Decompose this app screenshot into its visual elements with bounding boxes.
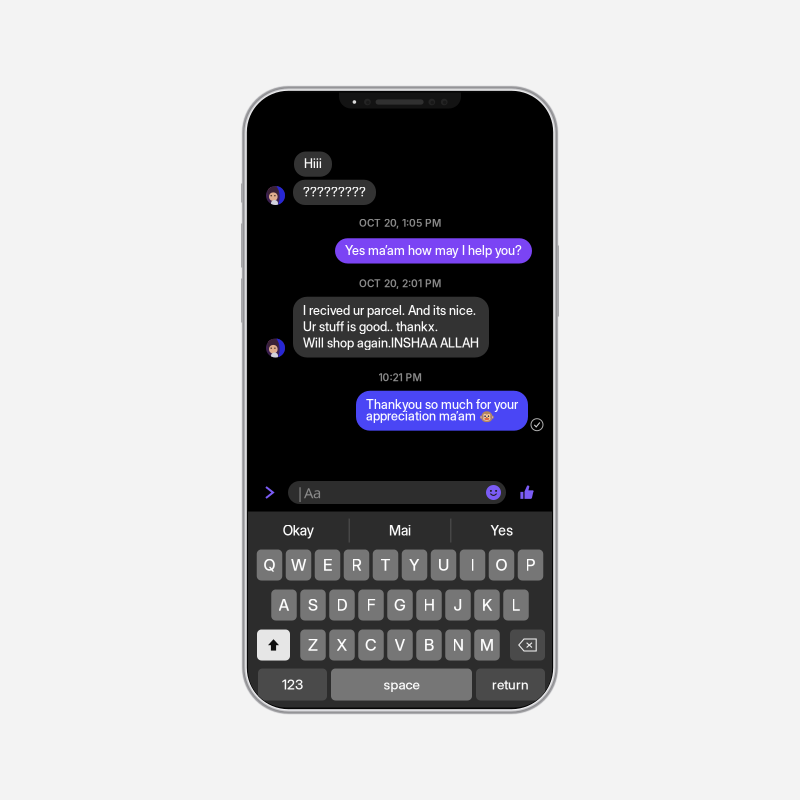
staticText: Y [409, 555, 420, 575]
button[interactable]: J [445, 589, 471, 620]
staticText: N [452, 635, 463, 655]
staticText: W [291, 555, 306, 575]
button[interactable]: Okay [248, 511, 349, 549]
staticText: B [424, 635, 434, 655]
button[interactable]: Mai [350, 511, 450, 549]
button[interactable]: D [329, 589, 355, 620]
staticText: O [495, 555, 507, 575]
button[interactable]: Z [300, 629, 326, 660]
staticText: |Aa [296, 483, 321, 502]
staticText: Yes ma’am how may I help you? [345, 243, 522, 258]
staticText: S [308, 595, 318, 615]
button[interactable]: X [329, 629, 355, 660]
staticText: 123 [282, 676, 303, 693]
staticText: T [380, 555, 390, 575]
staticText: M [480, 635, 494, 655]
button[interactable]: Choose an emoji [486, 485, 501, 500]
staticText: C [365, 635, 377, 655]
staticText: L [511, 595, 520, 615]
button[interactable]: M [474, 629, 500, 660]
staticText: H [423, 595, 434, 615]
staticText: ????????? [303, 184, 366, 199]
staticText: V [394, 635, 405, 655]
staticText: E [323, 555, 332, 575]
button[interactable]: P [518, 549, 543, 580]
staticText: Hiii [304, 156, 322, 171]
staticText: X [336, 635, 347, 655]
staticText: I [470, 555, 474, 575]
button[interactable]: E [315, 549, 340, 580]
staticText: G [394, 595, 406, 615]
staticText: A [278, 595, 289, 615]
staticText: 10:21 PM [378, 371, 421, 384]
staticText: P [525, 555, 535, 575]
button[interactable]: 123 [258, 668, 327, 700]
button[interactable]: V [387, 629, 413, 660]
button[interactable]: O [489, 549, 514, 580]
button[interactable]: G [387, 589, 413, 620]
button[interactable]: Show more actions [263, 484, 277, 500]
staticText: J [453, 595, 462, 615]
button[interactable]: F [358, 589, 384, 620]
button[interactable]: I [460, 549, 485, 580]
button[interactable]: B [416, 629, 442, 660]
button[interactable]: Yes [451, 511, 552, 549]
button[interactable]: C [358, 629, 384, 660]
button[interactable]: R [344, 549, 369, 580]
staticText: Yes [490, 522, 513, 539]
staticText: D [336, 595, 347, 615]
button[interactable]: Send a like [520, 484, 535, 500]
button[interactable]: N [445, 629, 471, 660]
staticText: space [383, 676, 419, 693]
button[interactable]: Y [402, 549, 427, 580]
button[interactable]: space [331, 668, 472, 700]
button[interactable]: L [503, 589, 529, 620]
staticText: R [351, 555, 361, 575]
staticText: K [482, 595, 492, 615]
button[interactable]: return [476, 668, 545, 700]
staticText: Q [263, 555, 275, 575]
button[interactable]: S [300, 589, 326, 620]
button[interactable]: T [373, 549, 398, 580]
staticText: I recived ur parcel. And its nice. Ur st… [303, 303, 479, 350]
button[interactable]: W [286, 549, 311, 580]
staticText: return [492, 676, 529, 693]
staticText: Okay [283, 522, 314, 539]
staticText: U [438, 555, 449, 575]
button[interactable]: Q [257, 549, 282, 580]
staticText: OCT 20, 2:01 PM [359, 277, 441, 290]
staticText: OCT 20, 1:05 PM [359, 217, 441, 229]
staticText: Z [308, 635, 318, 655]
button[interactable]: A [271, 589, 297, 620]
button[interactable]: Shift [257, 629, 290, 660]
staticText: Mai [389, 522, 411, 539]
staticText: Thankyou so much for your appreciation m… [366, 397, 518, 424]
button[interactable]: Delete [510, 629, 545, 660]
staticText: F [366, 595, 375, 615]
button[interactable]: K [474, 589, 500, 620]
button[interactable]: U [431, 549, 456, 580]
button[interactable]: H [416, 589, 442, 620]
